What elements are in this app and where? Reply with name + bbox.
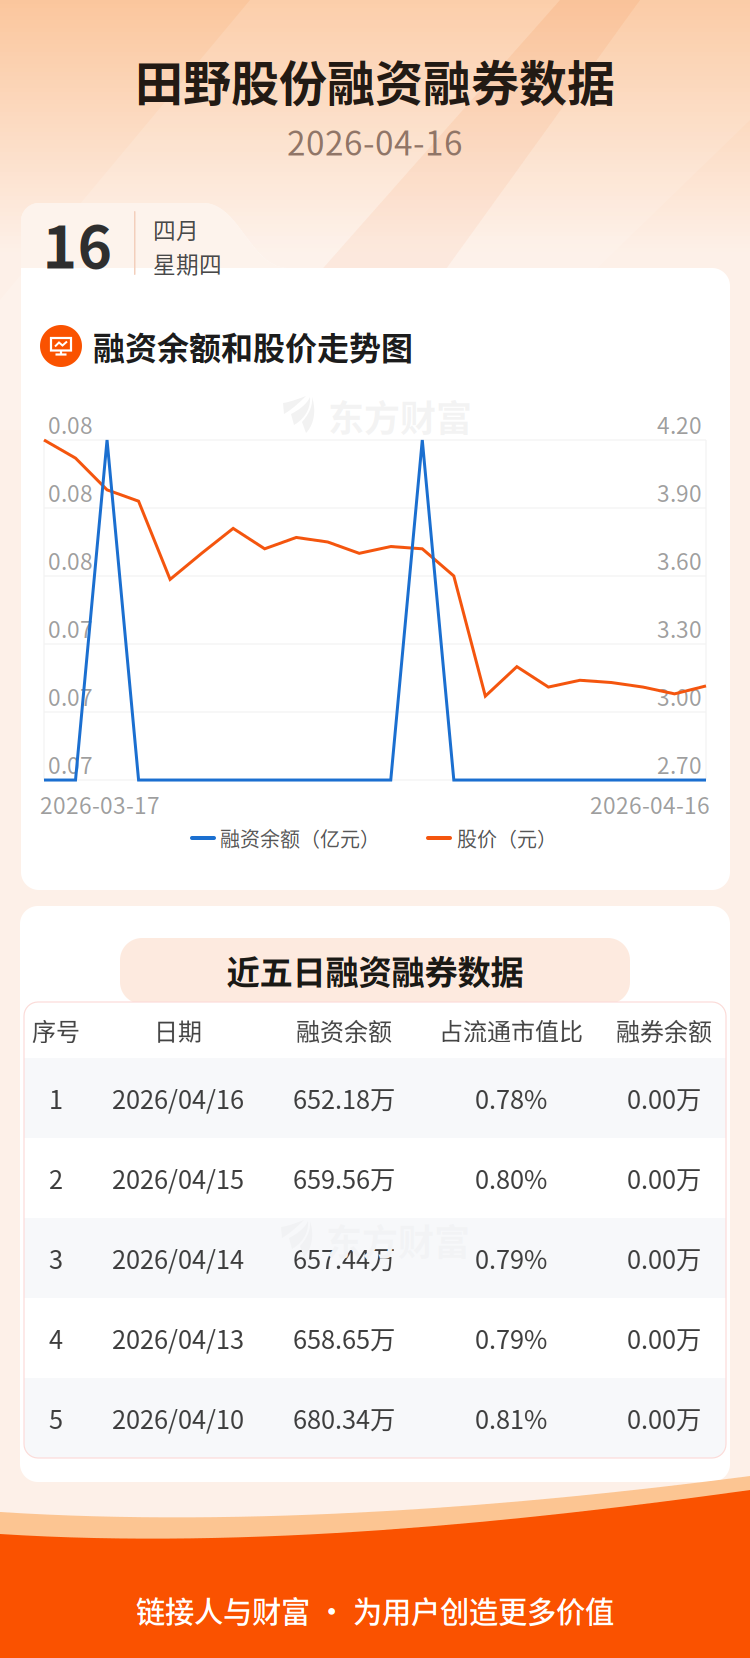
staticText: 东方财富 [326,1214,470,1266]
staticText: 659.56万 [293,1160,395,1196]
staticText: 融资余额和股价走势图 [93,323,413,369]
staticText: 0.08 [48,544,93,576]
staticText: 0.79% [475,1320,547,1356]
staticText: 2026-03-17 [40,788,160,820]
staticText: 链接人与财富 · 为用户创造更多价值 [136,1589,614,1631]
staticText: 3.60 [657,544,702,576]
staticText: 2026-04-16 [287,117,463,165]
staticText: 0.00万 [627,1240,701,1276]
staticText: 近五日融资融券数据 [226,946,523,994]
staticText: 3.00 [657,680,702,712]
staticText: 序号 [32,1013,80,1047]
staticText: 4 [49,1320,63,1356]
staticText: 652.18万 [293,1080,395,1116]
staticText: 3.90 [657,476,702,508]
staticText: 东方财富 [328,390,472,442]
staticText: 4.20 [657,408,702,440]
staticText: 田野股份融资融券数据 [135,45,615,115]
staticText: 日期 [154,1013,202,1047]
staticText: 融资余额（亿元） [220,823,380,852]
staticText: 0.80% [475,1160,547,1196]
staticText: 2 [49,1160,63,1196]
staticText: 星期四 [153,247,222,279]
staticText: 0.00万 [627,1160,701,1196]
staticText: 0.00万 [627,1400,701,1436]
staticText: 占流通市值比 [439,1013,583,1047]
staticText: 658.65万 [293,1320,395,1356]
staticText: 0.07 [48,680,93,712]
staticText: 1 [49,1080,63,1116]
staticText: 0.79% [475,1240,547,1276]
staticText: 四月 [153,213,199,245]
staticText: 3 [49,1240,63,1276]
staticText: 2026/04/10 [112,1400,244,1436]
staticText: 2026/04/14 [112,1240,244,1276]
staticText: 0.81% [475,1400,547,1436]
staticText: 3.30 [657,612,702,644]
staticText: 16 [42,200,112,285]
staticText: 股价（元） [457,823,557,852]
staticText: 融券余额 [616,1013,712,1047]
staticText: 0.08 [48,476,93,508]
staticText: 融资余额 [296,1013,392,1047]
staticText: 0.00万 [627,1320,701,1356]
staticText: 0.07 [48,748,93,780]
staticText: 2026/04/16 [112,1080,244,1116]
staticText: 2026/04/13 [112,1320,244,1356]
staticText: 2026-04-16 [590,788,710,820]
staticText: 657.44万 [293,1240,395,1276]
staticText: 0.08 [48,408,93,440]
staticText: 2.70 [657,748,702,780]
staticText: 680.34万 [293,1400,395,1436]
staticText: 0.00万 [627,1080,701,1116]
staticText: 0.78% [475,1080,547,1116]
staticText: 0.07 [48,612,93,644]
staticText: 2026/04/15 [112,1160,244,1196]
staticText: 5 [49,1400,63,1436]
